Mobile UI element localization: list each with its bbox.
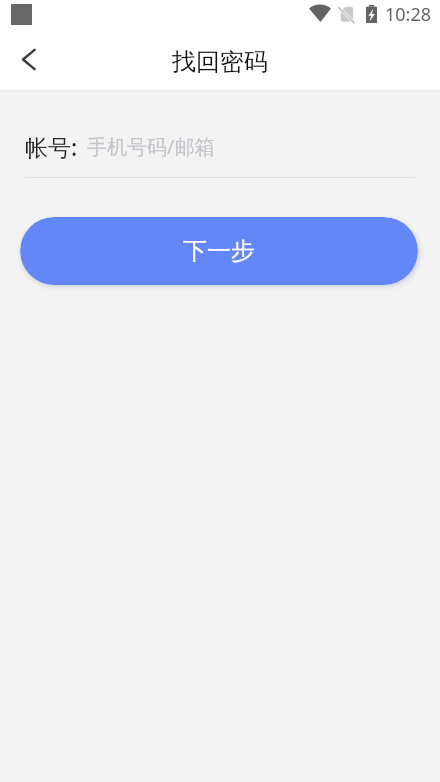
button[interactable]: 帐号: xyxy=(0,118,440,178)
staticText: 帐号: xyxy=(25,131,78,162)
staticText: 找回密码 xyxy=(172,47,268,77)
staticText: 手机号码/邮箱 xyxy=(87,133,215,160)
button[interactable]: 下一步 xyxy=(20,217,418,285)
staticText: 10:28 xyxy=(385,2,432,27)
staticText: 下一步 xyxy=(183,236,255,266)
button[interactable]: Back xyxy=(4,29,52,89)
